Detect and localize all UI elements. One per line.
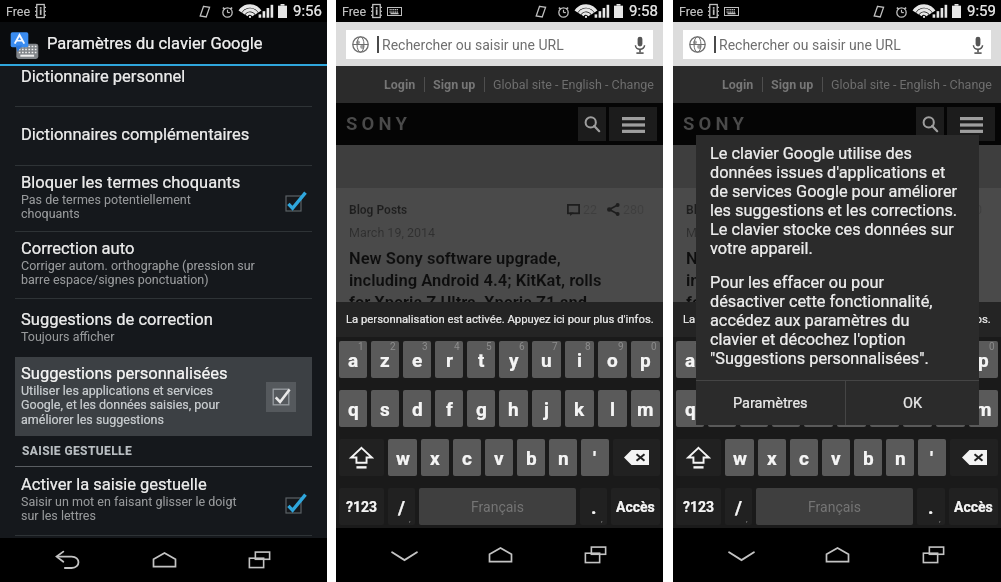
button[interactable]: Hide keyboard xyxy=(376,535,432,575)
button[interactable]: k xyxy=(903,390,932,427)
button[interactable]: ' xyxy=(581,439,609,476)
button[interactable]: Paramètres xyxy=(696,381,845,425)
button[interactable]: m xyxy=(969,390,998,427)
button[interactable]: h xyxy=(499,390,528,427)
button[interactable]: Accès xyxy=(611,488,660,525)
button[interactable]: Space xyxy=(419,488,576,525)
button[interactable]: r xyxy=(435,341,463,378)
button[interactable]: o xyxy=(598,341,627,378)
button[interactable]: Home xyxy=(809,535,865,575)
button[interactable]: y xyxy=(499,341,528,378)
button[interactable]: m xyxy=(631,390,660,427)
staticText: Paramètres xyxy=(733,395,808,412)
button[interactable]: La personnalisation est activée. Appuyez… xyxy=(336,302,663,337)
staticText: SONY xyxy=(683,113,749,135)
button[interactable]: ?123 xyxy=(339,488,384,525)
button[interactable]: Home xyxy=(472,535,528,575)
staticText: Free xyxy=(6,4,31,19)
button[interactable]: Shift xyxy=(339,439,384,476)
button[interactable]: Home xyxy=(136,540,192,580)
button[interactable]: s xyxy=(708,390,736,427)
button[interactable]: Suggestions personnalisées xyxy=(15,357,312,436)
button[interactable]: Search xyxy=(916,107,944,141)
button[interactable]: z xyxy=(708,341,736,378)
staticText: b xyxy=(526,447,537,469)
button[interactable]: b xyxy=(517,439,545,476)
button[interactable]: c xyxy=(453,439,481,476)
button[interactable]: / xyxy=(725,488,752,525)
button[interactable]: Menu xyxy=(609,107,657,141)
button[interactable]: Bloquer les termes choquants xyxy=(0,166,327,231)
button[interactable]: ' xyxy=(918,439,946,476)
button[interactable]: Suggestions de correction xyxy=(0,299,327,357)
button[interactable]: a xyxy=(339,341,367,378)
button[interactable]: q xyxy=(676,390,704,427)
button[interactable]: u xyxy=(870,341,899,378)
button[interactable]: Dictionnaires complémentaires xyxy=(0,107,327,165)
button[interactable]: e xyxy=(403,341,431,378)
button[interactable]: s xyxy=(371,390,399,427)
button[interactable]: l xyxy=(598,390,627,427)
button[interactable]: Back xyxy=(40,540,96,580)
button[interactable]: a xyxy=(676,341,704,378)
button[interactable]: Hide keyboard xyxy=(713,535,769,575)
button[interactable]: p xyxy=(969,341,998,378)
button[interactable]: l xyxy=(936,390,965,427)
button[interactable]: t xyxy=(467,341,495,378)
button[interactable]: Space xyxy=(756,488,913,525)
button[interactable]: Dictionnaire personnel xyxy=(0,66,327,106)
button[interactable]: La personnalisation est activée. Appuyez… xyxy=(673,302,1001,337)
button[interactable]: w xyxy=(725,439,754,476)
button[interactable]: . xyxy=(917,488,945,525)
button[interactable]: e xyxy=(740,341,768,378)
button[interactable]: p xyxy=(631,341,660,378)
button[interactable]: i xyxy=(565,341,594,378)
button[interactable]: Activer la saisie gestuelle xyxy=(0,467,327,535)
button[interactable]: j xyxy=(870,390,899,427)
button[interactable]: Recent apps xyxy=(231,540,287,580)
button[interactable]: x xyxy=(421,439,449,476)
button[interactable]: j xyxy=(532,390,561,427)
button[interactable]: v xyxy=(485,439,513,476)
button[interactable]: f xyxy=(772,390,800,427)
button[interactable]: w xyxy=(388,439,417,476)
button[interactable]: x xyxy=(758,439,786,476)
button[interactable]: Accès xyxy=(949,488,998,525)
button[interactable]: Recent apps xyxy=(905,535,961,575)
button[interactable]: Shift xyxy=(676,439,721,476)
button[interactable]: b xyxy=(854,439,882,476)
button[interactable]: Correction auto xyxy=(0,232,327,298)
button[interactable]: g xyxy=(467,390,495,427)
button[interactable]: g xyxy=(804,390,833,427)
button[interactable]: v xyxy=(822,439,850,476)
button[interactable]: d xyxy=(403,390,431,427)
staticText: Utiliser les applications et services Go… xyxy=(21,383,220,428)
button[interactable]: / xyxy=(388,488,415,525)
button[interactable]: d xyxy=(740,390,768,427)
button[interactable]: Delete xyxy=(613,439,660,476)
button[interactable]: i xyxy=(903,341,932,378)
button[interactable]: Rechercher ou saisir une URL xyxy=(346,30,653,59)
staticText: 22 xyxy=(583,202,598,217)
button[interactable]: h xyxy=(837,390,866,427)
button[interactable]: r xyxy=(772,341,800,378)
button[interactable]: n xyxy=(549,439,577,476)
button[interactable]: . xyxy=(580,488,607,525)
button[interactable]: y xyxy=(837,341,866,378)
button[interactable]: n xyxy=(886,439,914,476)
button[interactable]: Delete xyxy=(950,439,998,476)
button[interactable]: OK xyxy=(846,381,979,425)
button[interactable]: Menu xyxy=(947,107,995,141)
button[interactable]: Rechercher ou saisir une URL xyxy=(683,30,991,59)
button[interactable]: f xyxy=(435,390,463,427)
button[interactable]: Search xyxy=(578,107,606,141)
button[interactable]: Recent apps xyxy=(567,535,623,575)
button[interactable]: k xyxy=(565,390,594,427)
button[interactable]: q xyxy=(339,390,367,427)
button[interactable]: u xyxy=(532,341,561,378)
button[interactable]: z xyxy=(371,341,399,378)
button[interactable]: ?123 xyxy=(676,488,721,525)
button[interactable]: c xyxy=(790,439,818,476)
button[interactable]: t xyxy=(804,341,833,378)
